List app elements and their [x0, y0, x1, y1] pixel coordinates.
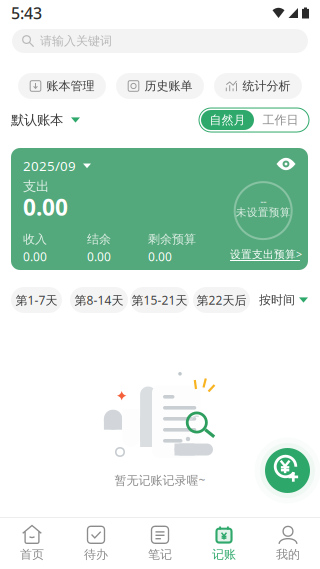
- staticText: 工作日: [262, 113, 298, 127]
- staticText: 历史账单: [144, 79, 192, 93]
- button[interactable]: 按时间: [259, 287, 308, 313]
- staticText: 统计分析: [242, 79, 290, 93]
- staticText: 5:43: [11, 2, 42, 24]
- staticText: 按时间: [259, 293, 295, 307]
- staticText: 笔记: [148, 547, 172, 562]
- staticText: 暂无记账记录喔~: [114, 472, 205, 488]
- staticText: 我的: [276, 547, 300, 562]
- staticText: 0.00: [148, 249, 172, 265]
- staticText: 剩余预算: [148, 232, 196, 247]
- button[interactable]: 记账: [192, 517, 256, 569]
- staticText: 0.00: [87, 249, 111, 265]
- button[interactable]: 待办: [64, 517, 128, 569]
- staticText: 第15-21天: [131, 292, 187, 308]
- button[interactable]: 默认账本: [11, 108, 80, 132]
- button[interactable]: 我的: [256, 517, 320, 569]
- staticText: 记账: [212, 547, 236, 562]
- staticText: 0.00: [23, 192, 68, 222]
- button[interactable]: 首页: [0, 517, 64, 569]
- button[interactable]: 第22天后: [193, 287, 250, 313]
- staticText: 收入: [23, 232, 47, 247]
- button[interactable]: 工作日: [254, 110, 307, 130]
- staticText: 未设置预算: [236, 206, 291, 219]
- button[interactable]: 历史账单: [116, 73, 204, 99]
- button[interactable]: 自然月: [201, 110, 254, 130]
- button[interactable]: 请输入关键词: [12, 29, 308, 53]
- staticText: 待办: [84, 547, 108, 562]
- button[interactable]: 隐藏金额: [274, 155, 298, 173]
- staticText: 默认账本: [11, 112, 63, 128]
- button[interactable]: 第1-7天: [11, 287, 62, 313]
- button[interactable]: 账本管理: [18, 73, 106, 99]
- staticText: 0.00: [23, 249, 47, 265]
- button[interactable]: 第15-21天: [130, 287, 189, 313]
- staticText: 第1-7天: [15, 292, 57, 308]
- button[interactable]: 记一笔: [254, 437, 320, 503]
- staticText: 请输入关键词: [40, 34, 112, 48]
- button[interactable]: 笔记: [128, 517, 192, 569]
- staticText: 第8-14天: [74, 292, 123, 308]
- staticText: 支出: [23, 178, 49, 194]
- staticText: --: [260, 193, 266, 208]
- staticText: 2025/09: [23, 157, 76, 175]
- staticText: 设置支出预算>: [230, 247, 302, 261]
- button[interactable]: 第8-14天: [70, 287, 128, 313]
- staticText: 账本管理: [46, 79, 94, 93]
- staticText: 结余: [87, 232, 111, 247]
- button[interactable]: 设置支出预算>: [230, 248, 304, 262]
- button[interactable]: 统计分析: [214, 73, 302, 99]
- staticText: 自然月: [209, 113, 245, 127]
- staticText: 第22天后: [196, 292, 246, 308]
- staticText: 首页: [20, 547, 44, 562]
